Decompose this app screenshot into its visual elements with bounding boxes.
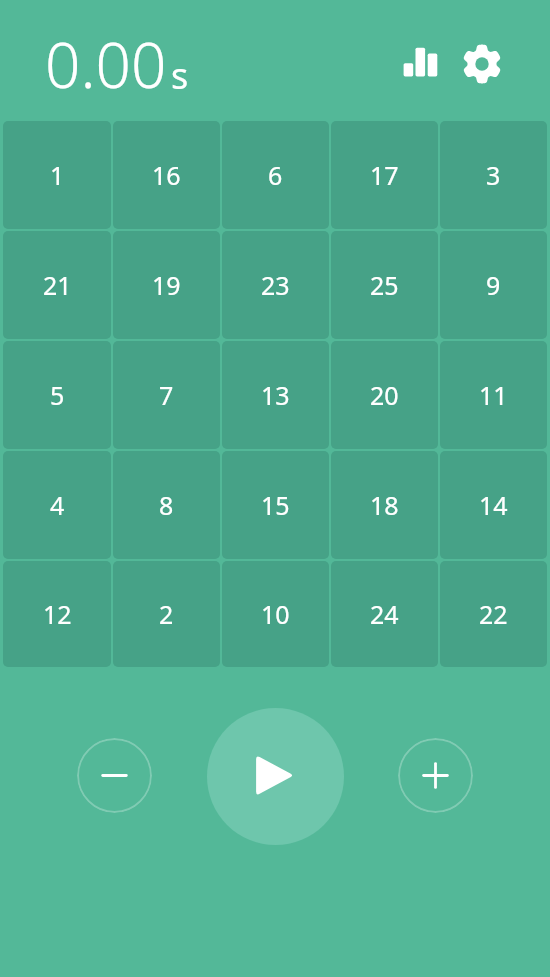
button[interactable]: 3 <box>440 121 547 229</box>
staticText: 7 <box>159 378 174 412</box>
staticText: 17 <box>370 158 399 192</box>
button[interactable]: 20 <box>331 341 438 449</box>
staticText: s <box>171 51 189 100</box>
button[interactable]: 13 <box>222 341 329 449</box>
button[interactable]: 1 <box>3 121 111 229</box>
button[interactable]: 23 <box>222 231 329 339</box>
button[interactable]: Decrease grid size <box>77 738 152 813</box>
button[interactable]: 5 <box>3 341 111 449</box>
button[interactable]: 17 <box>331 121 438 229</box>
button[interactable]: Settings <box>458 40 506 88</box>
button[interactable]: 10 <box>222 561 329 667</box>
staticText: 1 <box>50 158 65 192</box>
staticText: 15 <box>261 488 290 522</box>
staticText: 22 <box>479 597 508 631</box>
staticText: 11 <box>479 378 508 412</box>
button[interactable]: 15 <box>222 451 329 559</box>
staticText: 19 <box>152 268 181 302</box>
button[interactable]: 4 <box>3 451 111 559</box>
button[interactable]: 25 <box>331 231 438 339</box>
button[interactable]: Statistics <box>396 40 444 88</box>
button[interactable]: 24 <box>331 561 438 667</box>
staticText: 25 <box>370 268 399 302</box>
button[interactable]: 18 <box>331 451 438 559</box>
staticText: 23 <box>261 268 290 302</box>
staticText: 21 <box>43 268 72 302</box>
staticText: 0.00 <box>45 22 167 106</box>
staticText: 18 <box>370 488 399 522</box>
staticText: 12 <box>43 597 72 631</box>
staticText: 14 <box>479 488 508 522</box>
button[interactable]: 12 <box>3 561 111 667</box>
staticText: 13 <box>261 378 290 412</box>
button[interactable]: 22 <box>440 561 547 667</box>
staticText: 20 <box>370 378 399 412</box>
button[interactable]: 16 <box>113 121 220 229</box>
button[interactable]: 14 <box>440 451 547 559</box>
staticText: 3 <box>486 158 501 192</box>
button[interactable]: 6 <box>222 121 329 229</box>
staticText: 8 <box>159 488 174 522</box>
staticText: 24 <box>370 597 399 631</box>
button[interactable]: Start <box>207 708 344 845</box>
button[interactable]: Increase grid size <box>398 738 473 813</box>
staticText: 9 <box>486 268 501 302</box>
button[interactable]: 21 <box>3 231 111 339</box>
button[interactable]: 19 <box>113 231 220 339</box>
staticText: 4 <box>50 488 65 522</box>
button[interactable]: 11 <box>440 341 547 449</box>
button[interactable]: 9 <box>440 231 547 339</box>
button[interactable]: 7 <box>113 341 220 449</box>
button[interactable]: 8 <box>113 451 220 559</box>
staticText: 5 <box>50 378 65 412</box>
staticText: 2 <box>159 597 174 631</box>
staticText: 6 <box>268 158 283 192</box>
staticText: 16 <box>152 158 181 192</box>
button[interactable]: 2 <box>113 561 220 667</box>
staticText: 10 <box>261 597 290 631</box>
